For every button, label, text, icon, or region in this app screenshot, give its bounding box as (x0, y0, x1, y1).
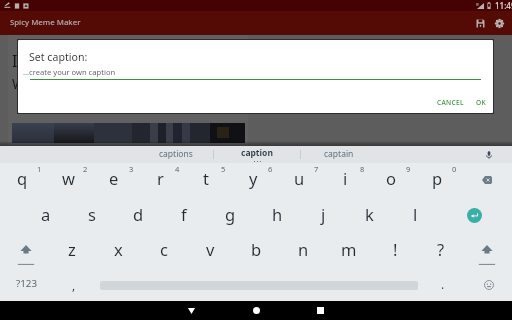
button[interactable]: x (95, 239, 141, 267)
staticText: . (441, 276, 445, 292)
staticText: 6 (268, 164, 273, 174)
button[interactable]: Back (171, 301, 212, 320)
staticText: Spicy Meme Maker (10, 17, 81, 28)
button[interactable]: captions (135, 146, 216, 163)
staticText: l (413, 203, 418, 225)
staticText: 1 (37, 164, 42, 174)
button[interactable]: b (233, 239, 279, 267)
staticText: x (114, 238, 123, 260)
staticText: a (41, 203, 51, 225)
staticText: ...create your own caption (23, 67, 116, 77)
button[interactable]: caption (214, 146, 300, 163)
staticText: h (272, 203, 283, 225)
button[interactable]: CANCEL (428, 94, 472, 110)
staticText: g (225, 203, 236, 225)
staticText: CANCEL (437, 98, 464, 107)
button[interactable]: 6 (230, 168, 276, 196)
button[interactable]: k (346, 204, 392, 232)
staticText: 5 (221, 164, 226, 174)
staticText: W (12, 74, 26, 93)
button[interactable]: captain (298, 146, 379, 163)
button[interactable]: ?123 (11, 277, 42, 291)
staticText: t (203, 167, 209, 189)
staticText: caption (241, 147, 273, 159)
staticText: , (72, 277, 76, 293)
button[interactable]: 8 (322, 168, 368, 196)
button[interactable]: n (280, 239, 326, 267)
button[interactable]: 3 (91, 168, 137, 196)
button[interactable]: 0 (414, 168, 460, 196)
staticText: r (157, 167, 164, 189)
button[interactable]: c (141, 239, 187, 267)
staticText: m (341, 238, 357, 260)
staticText: 11:49 (495, 0, 512, 11)
button[interactable]: Enter (467, 208, 482, 223)
staticText: 8 (360, 164, 365, 174)
button[interactable]: l (392, 204, 438, 232)
button[interactable]: , (66, 277, 82, 293)
staticText: z (68, 238, 76, 260)
button[interactable]: ! (372, 239, 418, 267)
staticText: 9 (406, 164, 411, 174)
button[interactable]: h (254, 204, 300, 232)
button[interactable]: s (69, 204, 115, 232)
button[interactable]: . (435, 277, 451, 293)
button[interactable]: v (187, 239, 233, 267)
staticText: i (343, 167, 348, 189)
button[interactable]: 9 (368, 168, 414, 196)
staticText: d (133, 203, 144, 225)
button[interactable]: 5 (183, 168, 229, 196)
button[interactable]: Home (236, 301, 277, 320)
staticText: ?123 (16, 277, 38, 290)
button[interactable]: Shift (18, 243, 34, 263)
staticText: q (17, 167, 28, 189)
button[interactable]: a (23, 204, 69, 232)
staticText: b (251, 238, 262, 260)
button[interactable]: 2 (45, 168, 91, 196)
staticText: 7 (314, 164, 319, 174)
button[interactable]: Shift (479, 243, 495, 263)
button[interactable]: 4 (137, 168, 183, 196)
button[interactable]: Voice input (483, 146, 495, 163)
button[interactable]: f (161, 204, 207, 232)
button[interactable]: 7 (276, 168, 322, 196)
button[interactable]: d (115, 204, 161, 232)
staticText: 0 (452, 164, 457, 174)
button[interactable]: 1 (0, 168, 45, 196)
button[interactable]: j (300, 204, 346, 232)
staticText: Set caption: (29, 50, 88, 64)
staticText: e (109, 167, 119, 189)
staticText: ! (393, 238, 398, 260)
staticText: y (249, 167, 258, 189)
staticText: 2 (83, 164, 88, 174)
button[interactable]: z (49, 239, 95, 267)
staticText: 3 (129, 164, 134, 174)
staticText: n (298, 238, 309, 260)
button[interactable]: Emoji (482, 278, 495, 291)
staticText: j (321, 203, 326, 225)
button[interactable]: Settings (489, 13, 509, 33)
staticText: w (62, 167, 75, 189)
staticText: v (206, 238, 215, 260)
button[interactable]: OK (468, 94, 493, 110)
staticText: k (365, 203, 374, 225)
button[interactable]: ? (418, 239, 464, 267)
staticText: c (160, 238, 168, 260)
button[interactable]: g (207, 204, 253, 232)
staticText: captain (324, 148, 354, 160)
staticText: o (386, 167, 396, 189)
staticText: captions (159, 148, 193, 160)
button[interactable]: Backspace (479, 174, 495, 186)
staticText: s (88, 203, 96, 225)
button[interactable]: Save (470, 13, 490, 33)
button[interactable]: m (326, 239, 372, 267)
staticText: f (181, 203, 187, 225)
staticText: In (12, 50, 28, 72)
staticText: u (294, 167, 305, 189)
staticText: OK (476, 98, 486, 107)
button[interactable]: Recents (300, 301, 341, 320)
staticText: 4 (175, 164, 180, 174)
staticText: ? (437, 238, 445, 260)
staticText: p (432, 167, 443, 189)
